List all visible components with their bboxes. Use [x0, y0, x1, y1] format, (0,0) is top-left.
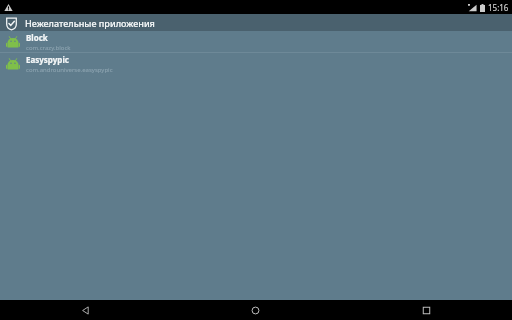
button[interactable]: Back [0, 300, 170, 320]
staticText: 15:16 [488, 2, 509, 13]
staticText: Нежелательные приложения [25, 17, 155, 29]
button[interactable]: Home [170, 300, 341, 320]
staticText: Block [26, 32, 48, 43]
button[interactable]: App protection [0, 14, 512, 31]
button[interactable]: Recent apps [341, 300, 512, 320]
other: App protection [3, 15, 19, 31]
staticText: com.crazy.block [26, 44, 71, 52]
button[interactable]: Block [0, 31, 512, 52]
staticText: Easyspypic [26, 54, 69, 65]
staticText: com.androuniverse.easyspypic [26, 66, 113, 74]
button[interactable]: Easyspypic [0, 53, 512, 74]
